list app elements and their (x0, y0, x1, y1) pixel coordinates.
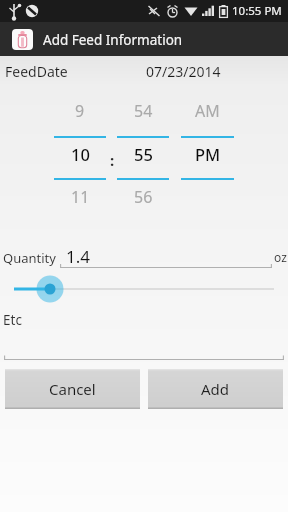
button[interactable]: FeedDate (0, 56, 288, 86)
staticText: 54 (134, 100, 153, 122)
staticText: Add Feed Information (43, 31, 183, 49)
button[interactable]: 54 (117, 86, 169, 241)
staticText: 11 (71, 186, 90, 208)
button[interactable]: App icon (12, 29, 33, 50)
staticText: 55 (134, 143, 153, 165)
staticText: Cancel (49, 379, 96, 399)
staticText: 07/23/2014 (146, 62, 221, 81)
button[interactable]: 9 (54, 86, 106, 241)
staticText: AM (195, 100, 220, 122)
staticText: 9 (75, 100, 85, 122)
button[interactable]: AM (181, 86, 234, 241)
staticText: 10:55 PM (232, 3, 282, 19)
staticText: FeedDate (5, 62, 68, 81)
staticText: PM (195, 143, 221, 165)
button[interactable]: Cancel (5, 369, 140, 409)
staticText: 10 (71, 143, 90, 165)
button[interactable]: 1.4 (60, 242, 272, 269)
button[interactable]: Add (148, 369, 283, 409)
staticText: Add (201, 379, 230, 399)
staticText: : (110, 150, 115, 170)
staticText: 56 (134, 186, 153, 208)
staticText: oz (274, 249, 287, 265)
staticText: Quantity (3, 249, 56, 267)
staticText: Etc (3, 311, 22, 329)
staticText: 1.4 (66, 245, 91, 268)
button[interactable]: Quantity slider (0, 275, 288, 303)
button[interactable]: Etc notes field (4, 323, 284, 361)
